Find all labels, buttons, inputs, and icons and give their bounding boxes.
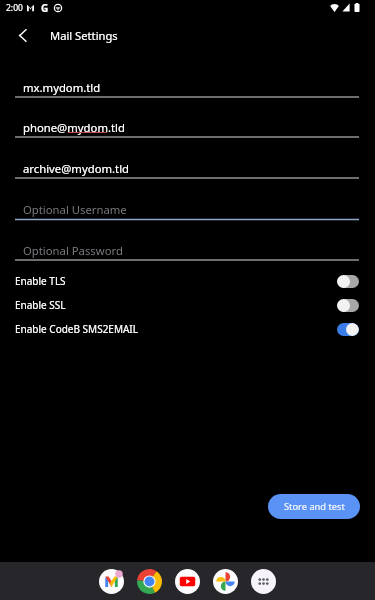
staticText: Enable TLS: [15, 274, 66, 288]
staticText: Optional Password: [23, 243, 123, 258]
staticText: G: [41, 1, 49, 15]
staticText: Enable SSL: [15, 298, 66, 312]
button[interactable]: Store and test: [268, 494, 360, 519]
button[interactable]: Chrome: [137, 569, 162, 594]
staticText: Mail Settings: [50, 28, 118, 43]
staticText: 2:00: [6, 2, 23, 14]
staticText: Store and test: [284, 500, 345, 513]
button[interactable]: YouTube: [175, 569, 200, 594]
staticText: Enable CodeB SMS2EMAIL: [15, 322, 138, 336]
staticText: Optional Username: [23, 202, 127, 217]
button[interactable]: Gmail: [99, 569, 124, 594]
button[interactable]: Photos: [213, 569, 238, 594]
staticText: phone@mydom.tld: [23, 120, 125, 135]
button[interactable]: All apps: [251, 569, 276, 594]
button[interactable]: Enable SSL: [0, 295, 375, 315]
button[interactable]: Enable TLS: [0, 271, 375, 291]
button[interactable]: Enable CodeB SMS2EMAIL: [0, 319, 375, 339]
staticText: mx.mydom.tld: [23, 80, 101, 95]
staticText: archive@mydom.tld: [23, 161, 129, 176]
button[interactable]: Back: [6, 22, 38, 48]
